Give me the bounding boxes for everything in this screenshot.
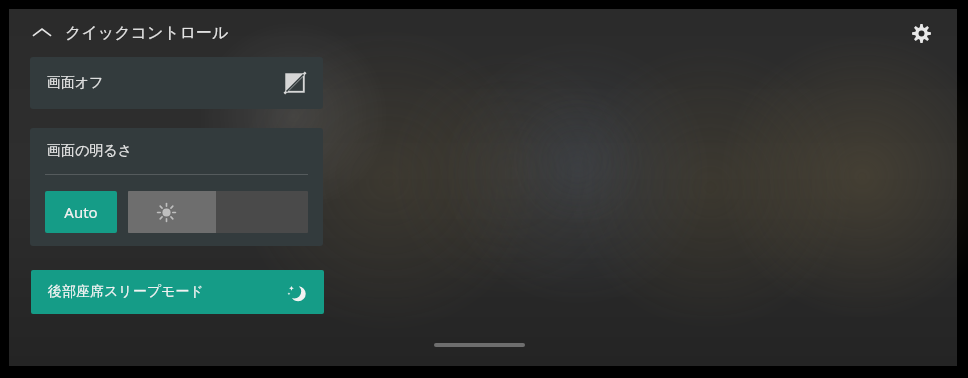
button[interactable]: Auto [45, 191, 117, 233]
button[interactable]: Settings [903, 15, 939, 51]
button[interactable]: Brightness [128, 191, 308, 233]
staticText: Auto [64, 202, 98, 222]
staticText: クイックコントロール [65, 23, 229, 43]
button[interactable]: 後部座席スリープモード [31, 270, 324, 314]
staticText: 画面の明るさ [47, 142, 132, 160]
button[interactable]: 画面オフ [30, 57, 323, 109]
staticText: 画面オフ [47, 74, 104, 92]
button[interactable]: Collapse [25, 16, 59, 50]
staticText: 後部座席スリープモード [48, 283, 204, 301]
button[interactable]: Drag handle [434, 343, 525, 347]
